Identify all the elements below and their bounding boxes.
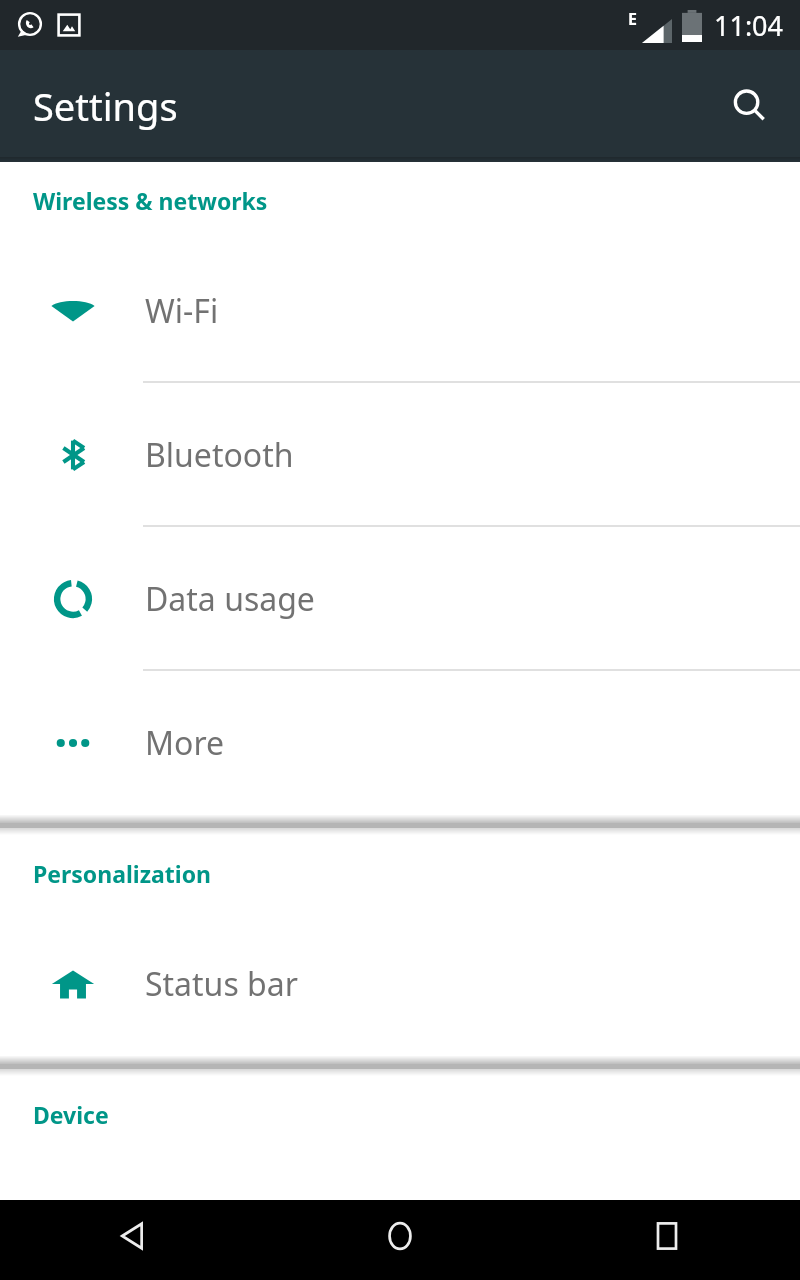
button[interactable]: More (0, 671, 800, 815)
staticText: 11:04 (714, 7, 784, 44)
staticText: Data usage (145, 577, 315, 621)
button[interactable]: Back (0, 1200, 266, 1280)
staticText: Wireless & networks (33, 185, 268, 216)
staticText: Device (33, 1099, 109, 1130)
button[interactable]: Data usage (0, 527, 800, 671)
staticText: Bluetooth (145, 433, 294, 477)
staticText: Status bar (145, 962, 298, 1006)
button[interactable]: Wi-Fi (0, 239, 800, 383)
button[interactable]: Recent apps (533, 1200, 800, 1280)
button[interactable]: Home (266, 1200, 533, 1280)
button[interactable]: Search (722, 78, 778, 134)
button[interactable]: Status bar (0, 912, 800, 1056)
staticText: More (145, 721, 225, 765)
button[interactable]: Bluetooth (0, 383, 800, 527)
staticText: Settings (33, 80, 178, 132)
staticText: Personalization (33, 858, 211, 889)
staticText: E (628, 8, 637, 30)
staticText: Wi-Fi (145, 289, 219, 333)
